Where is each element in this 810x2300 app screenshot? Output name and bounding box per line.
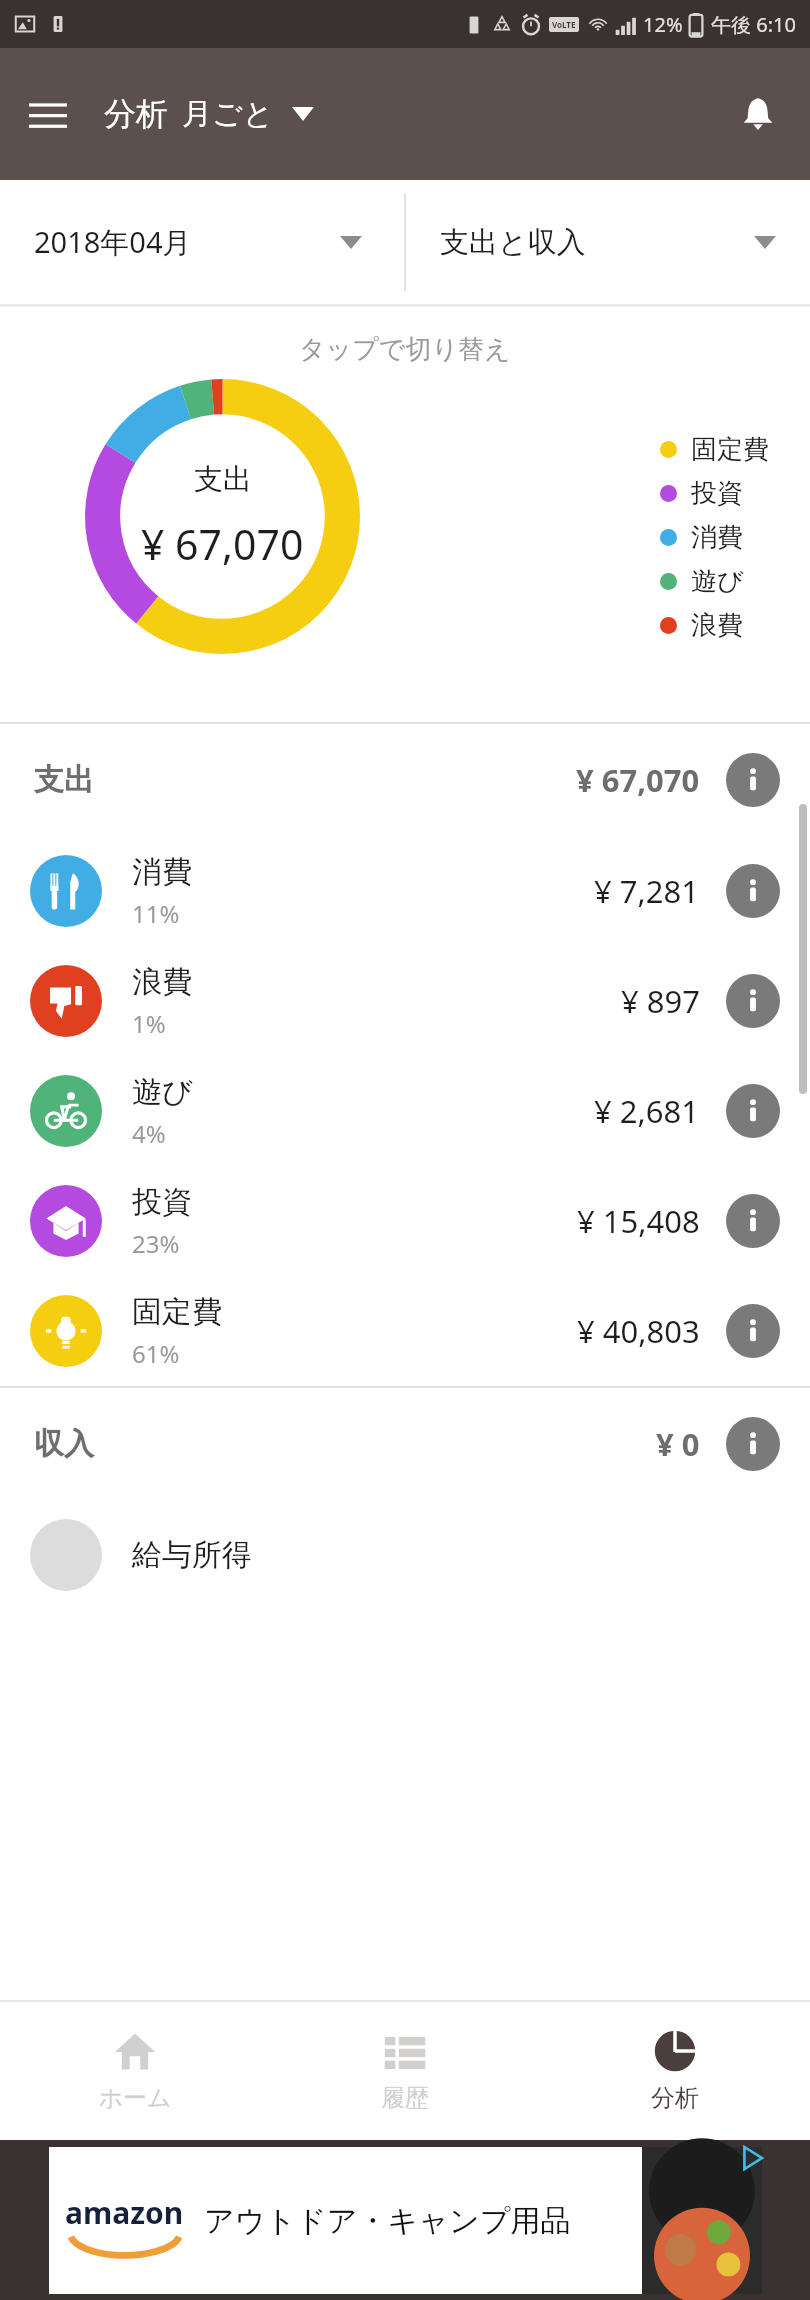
staticText: 遊び: [691, 565, 744, 598]
button[interactable]: 投資: [0, 1166, 810, 1276]
button[interactable]: 固定費: [0, 1276, 810, 1386]
staticText: 消費: [132, 853, 192, 891]
button[interactable]: Info: [726, 753, 780, 807]
staticText: 12%: [643, 11, 683, 38]
staticText: 2018年04月: [34, 222, 192, 262]
staticText: ¥ 897: [621, 980, 700, 1022]
staticText: 投資: [691, 477, 743, 510]
button[interactable]: 2018年04月: [0, 180, 404, 304]
button[interactable]: 浪費: [0, 946, 810, 1056]
staticText: ¥ 7,281: [594, 870, 700, 912]
button[interactable]: タップで切り替え: [0, 307, 810, 722]
button[interactable]: 支出: [0, 724, 810, 836]
button[interactable]: Info: [726, 1194, 780, 1248]
staticText: VoLTE: [552, 19, 576, 30]
button[interactable]: 分析: [104, 94, 314, 134]
button[interactable]: Menu: [20, 86, 76, 142]
staticText: アウトドア・キャンプ用品: [204, 2202, 571, 2240]
button[interactable]: Notifications: [728, 84, 788, 144]
button[interactable]: Info: [726, 1417, 780, 1471]
button[interactable]: Info: [726, 864, 780, 918]
staticText: 4%: [132, 1117, 166, 1150]
staticText: 61%: [132, 1337, 180, 1370]
staticText: 消費: [691, 521, 743, 554]
staticText: 投資: [132, 1183, 192, 1221]
button[interactable]: ホーム: [0, 2002, 270, 2140]
staticText: タップで切り替え: [299, 333, 511, 366]
staticText: ¥ 67,070: [576, 759, 700, 801]
staticText: 支出: [194, 461, 252, 498]
button[interactable]: Info: [726, 1304, 780, 1358]
staticText: 固定費: [691, 433, 769, 466]
staticText: ホーム: [98, 2083, 172, 2113]
staticText: 分析: [651, 2083, 699, 2113]
staticText: 1%: [132, 1007, 166, 1040]
button[interactable]: 収入: [0, 1388, 810, 1500]
staticText: 固定費: [132, 1293, 222, 1331]
button[interactable]: amazon: [49, 2147, 762, 2294]
staticText: 23%: [132, 1227, 180, 1260]
button[interactable]: 給与所得: [0, 1500, 810, 1610]
staticText: 浪費: [691, 609, 743, 642]
button[interactable]: 遊び: [0, 1056, 810, 1166]
staticText: ¥ 40,803: [577, 1310, 700, 1352]
staticText: 月ごと: [182, 95, 274, 133]
button[interactable]: 消費: [0, 836, 810, 946]
staticText: ¥ 2,681: [594, 1090, 700, 1132]
button[interactable]: 支出と収入: [406, 180, 810, 304]
button[interactable]: Info: [726, 1084, 780, 1138]
staticText: 履歴: [381, 2083, 429, 2113]
button[interactable]: 分析: [540, 2002, 810, 2140]
button[interactable]: 履歴: [270, 2002, 540, 2140]
staticText: 支出と収入: [440, 224, 586, 261]
staticText: ¥ 0: [656, 1423, 700, 1465]
staticText: 11%: [132, 897, 180, 930]
staticText: 給与所得: [132, 1536, 252, 1574]
staticText: ¥ 15,408: [577, 1200, 700, 1242]
staticText: 午後 6:10: [711, 11, 796, 38]
staticText: 浪費: [132, 963, 192, 1001]
button[interactable]: Info: [726, 974, 780, 1028]
staticText: 収入: [34, 1425, 94, 1463]
staticText: ¥ 67,070: [141, 516, 304, 572]
staticText: 支出: [34, 761, 94, 799]
staticText: amazon: [65, 2192, 184, 2233]
staticText: 遊び: [132, 1073, 193, 1111]
staticText: 分析: [104, 94, 168, 134]
